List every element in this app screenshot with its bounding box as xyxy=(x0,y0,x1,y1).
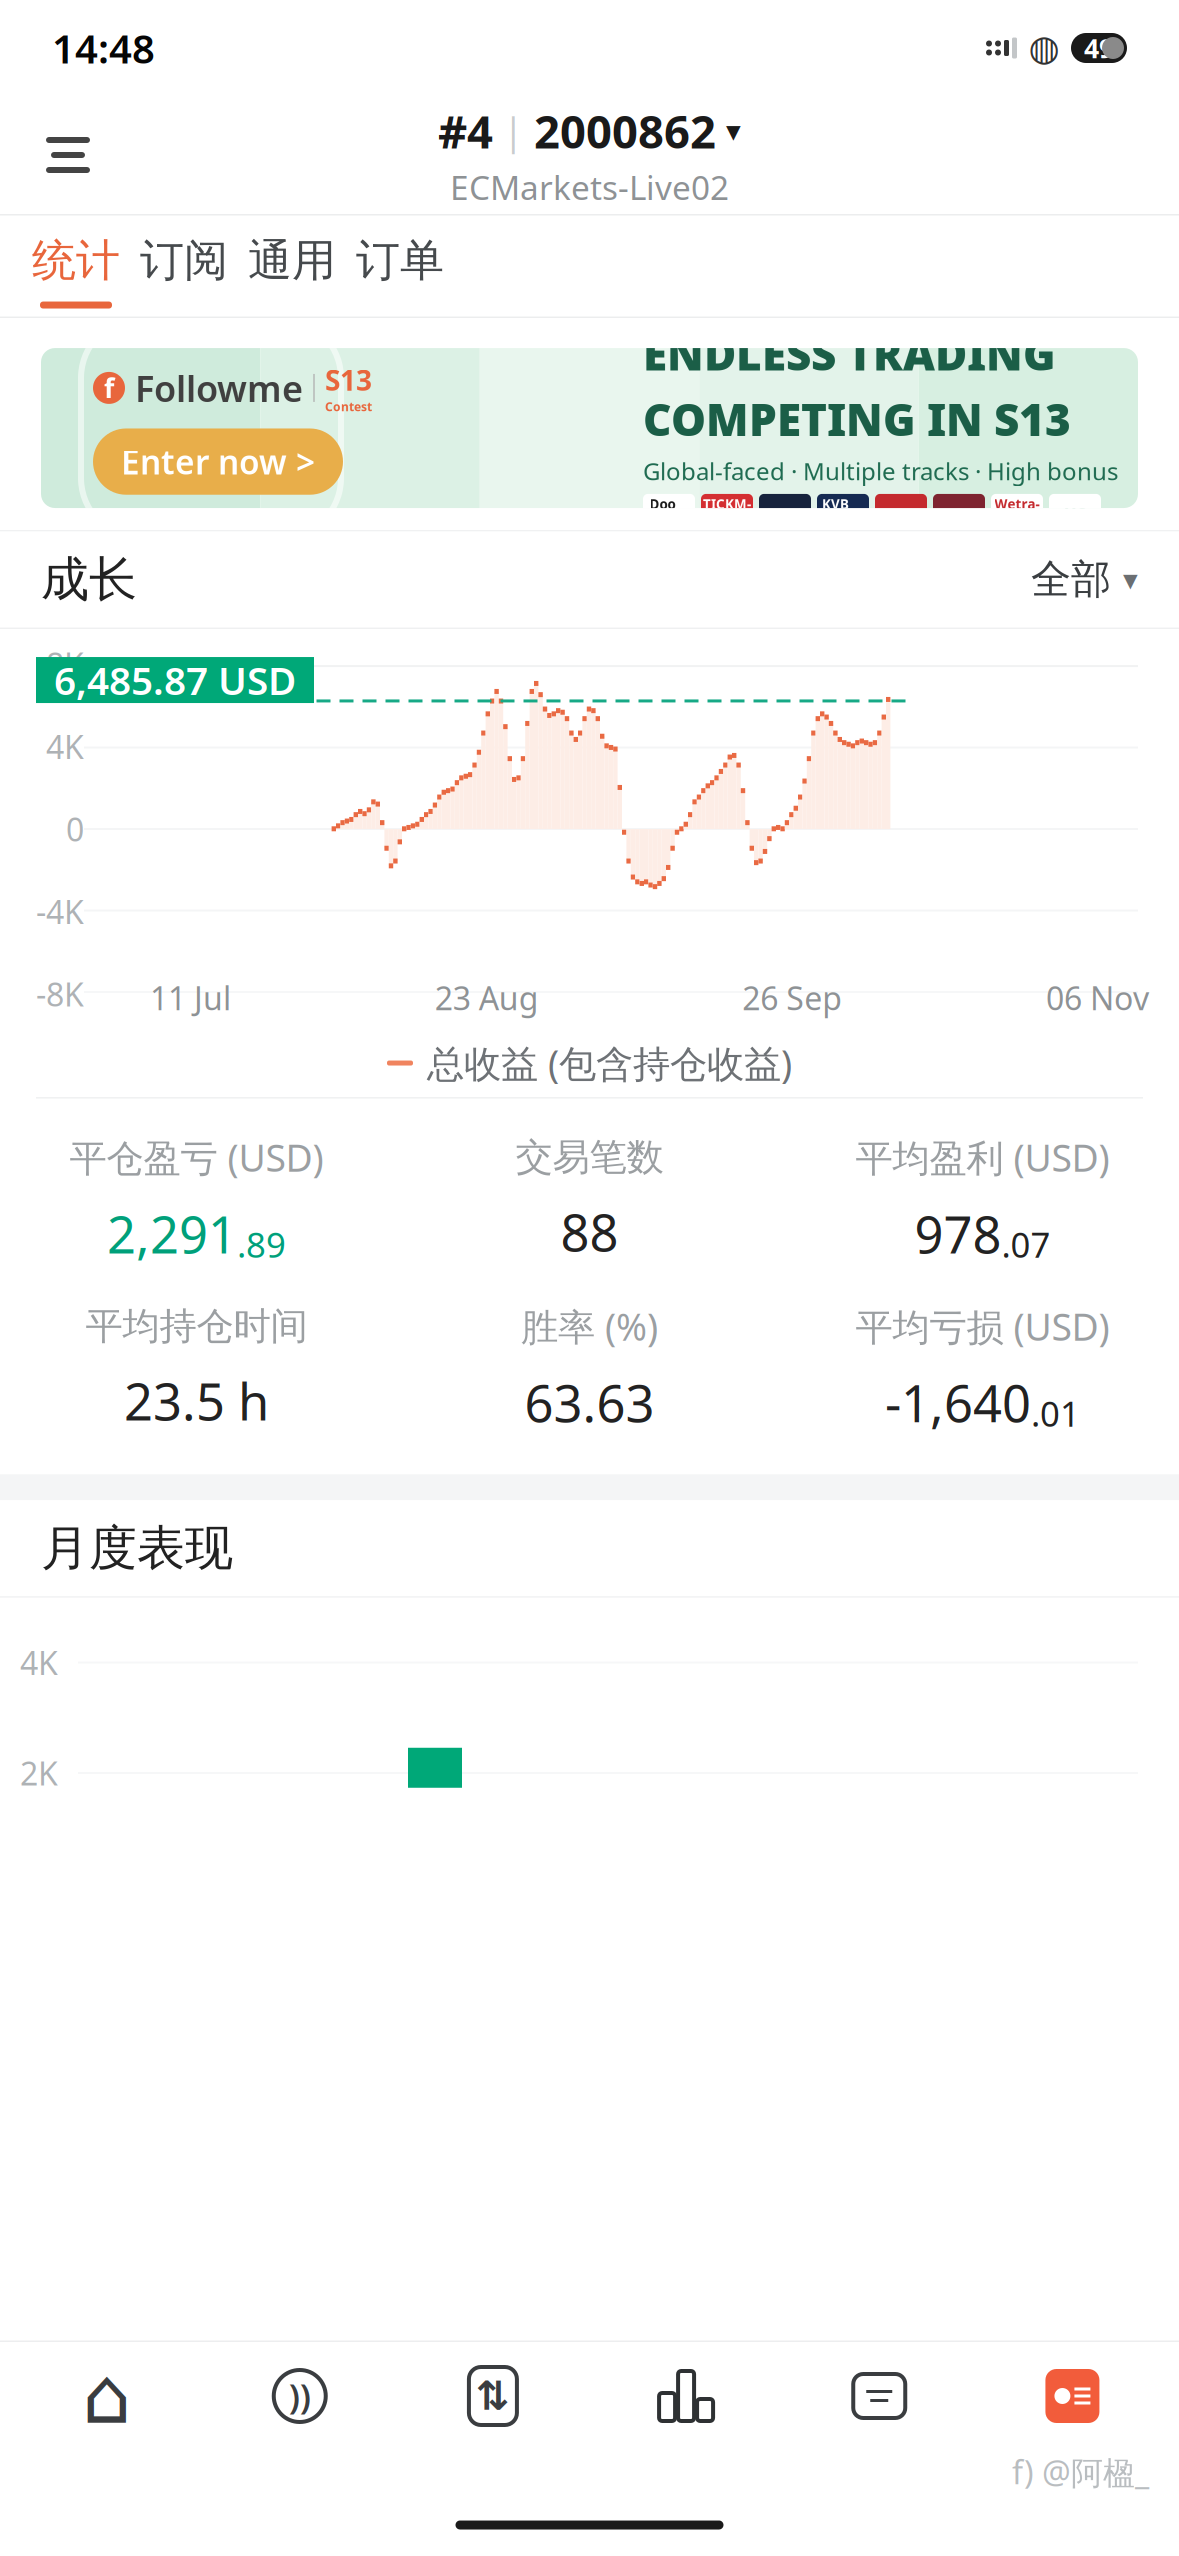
staticText: 统计 xyxy=(32,233,120,287)
staticText: ⇅ xyxy=(476,2373,510,2419)
button[interactable]: 统计 xyxy=(22,215,130,316)
staticText: 2,291 xyxy=(107,1200,237,1267)
staticText: 23 Aug xyxy=(435,976,539,1019)
staticText: S13 xyxy=(325,361,372,399)
staticText: 平仓盈亏 (USD) xyxy=(69,1132,323,1182)
staticText: 49 xyxy=(1084,30,1114,66)
button[interactable]: Home xyxy=(10,2342,203,2450)
staticText: 6,485.87 USD xyxy=(54,654,296,706)
staticText: #4 xyxy=(438,101,493,161)
button[interactable]: Trade xyxy=(396,2342,589,2450)
staticText: Global-faced · Multiple tracks · High bo… xyxy=(643,455,1118,487)
staticText: ▾ xyxy=(1123,563,1138,596)
staticText: FPG xyxy=(888,504,913,522)
staticText: 平均持仓时间 xyxy=(85,1303,307,1349)
staticText: f) @阿楹_ xyxy=(1012,2451,1149,2493)
staticText: 平均盈利 (USD) xyxy=(855,1132,1109,1182)
staticText: 订单 xyxy=(356,233,444,287)
button[interactable]: #4 xyxy=(438,101,741,209)
button[interactable]: 订阅 xyxy=(130,215,238,316)
staticText: 8K xyxy=(46,643,84,685)
staticText: COMPETING IN S13 xyxy=(643,390,1071,448)
button[interactable]: Feed xyxy=(203,2342,396,2450)
staticText: 11 Jul xyxy=(150,976,231,1019)
staticText: Doo Prime xyxy=(649,495,688,531)
staticText: 14:48 xyxy=(52,21,155,74)
staticText: 63.63 xyxy=(524,1369,654,1436)
button[interactable]: Messages xyxy=(783,2342,976,2450)
staticText: ◍ xyxy=(1028,28,1059,68)
staticText: -4K xyxy=(36,890,84,933)
staticText: -8K xyxy=(36,973,84,1015)
staticText: 通用 xyxy=(248,233,336,287)
staticText: f xyxy=(104,370,114,406)
button[interactable]: S13 Contest banner, Enter now xyxy=(0,318,1179,530)
staticText: 胜率 (%) xyxy=(521,1301,658,1351)
staticText: FXTM xyxy=(766,504,803,522)
staticText: 978 xyxy=(914,1200,1001,1267)
staticText: 交易笔数 xyxy=(515,1134,663,1180)
staticText: 平均亏损 (USD) xyxy=(855,1301,1109,1351)
staticText: 2K xyxy=(20,1752,58,1794)
staticText: 06 Nov xyxy=(1046,976,1149,1019)
staticText: 全部 xyxy=(1031,555,1111,604)
staticText: ECMarkets-Live02 xyxy=(450,165,729,209)
staticText: 23.5 h xyxy=(124,1367,269,1434)
staticText: 26 Sep xyxy=(742,976,842,1019)
staticText: 4K xyxy=(46,725,84,768)
button[interactable]: 全部 xyxy=(1031,555,1138,604)
staticText: TICKMILL xyxy=(703,495,751,531)
staticText: ▾ xyxy=(716,114,741,147)
staticText: Enter now > xyxy=(121,439,315,484)
staticText: ENDLESS TRADING xyxy=(643,324,1056,383)
staticText: 0 xyxy=(66,808,84,850)
staticText: Followme xyxy=(135,364,303,412)
staticText: 88 xyxy=(560,1198,618,1266)
staticText: .07 xyxy=(1001,1221,1050,1267)
button[interactable]: Stats xyxy=(589,2342,783,2450)
button[interactable]: 订单 xyxy=(346,215,454,316)
staticText: | xyxy=(493,106,534,156)
staticText: KVB PRIME xyxy=(822,495,864,531)
staticText: Wetrade xyxy=(994,495,1039,531)
button[interactable]: Menu xyxy=(28,115,108,195)
button[interactable]: 通用 xyxy=(238,215,346,316)
staticText: 成长 xyxy=(41,550,137,609)
staticText: Contest xyxy=(325,398,372,414)
staticText: 订阅 xyxy=(140,233,228,287)
staticText: 总收益 (包含持仓收益) xyxy=(427,1038,792,1088)
staticText: 4K xyxy=(20,1641,58,1684)
button[interactable]: Profile xyxy=(976,2342,1169,2450)
staticText: G xyxy=(954,504,964,522)
staticText: 2000862 xyxy=(534,101,716,161)
staticText: )) xyxy=(289,2373,311,2419)
staticText: .01 xyxy=(1031,1390,1080,1436)
staticText: ⌂ xyxy=(82,2352,131,2440)
staticText: -1,640 xyxy=(885,1369,1031,1436)
staticText: 月度表现 xyxy=(41,1519,233,1578)
staticText: .89 xyxy=(237,1221,286,1267)
